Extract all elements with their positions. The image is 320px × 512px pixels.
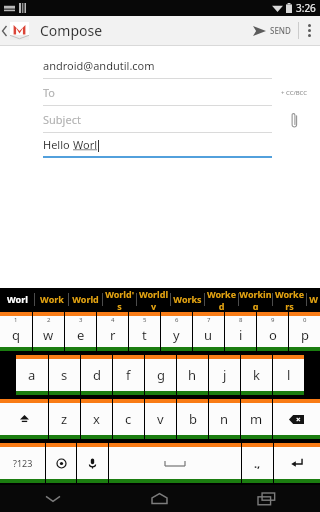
button[interactable]: W: [307, 288, 320, 310]
button[interactable]: f: [113, 355, 144, 395]
staticText: World: [72, 293, 99, 305]
staticText: 7: [207, 316, 211, 324]
button[interactable]: 6: [161, 312, 192, 351]
button[interactable]: 0: [289, 312, 320, 351]
button[interactable]: m: [241, 399, 272, 439]
button[interactable]: 8: [225, 312, 256, 351]
button[interactable]: Enter: [274, 443, 320, 483]
button[interactable]: Voice input: [77, 443, 108, 483]
button[interactable]: 5: [129, 312, 160, 351]
button[interactable]: Comma and period: [242, 443, 273, 483]
staticText: v: [157, 410, 164, 428]
staticText: i: [239, 326, 243, 344]
staticText: .,: [254, 456, 261, 471]
button[interactable]: h: [177, 355, 208, 395]
button[interactable]: Recent apps: [213, 485, 320, 512]
staticText: d: [93, 366, 101, 384]
button[interactable]: Navigate up: [0, 22, 31, 40]
button[interactable]: Attach file: [283, 109, 305, 131]
button[interactable]: android@andutil.com: [43, 52, 272, 78]
staticText: u: [204, 326, 213, 344]
button[interactable]: To: [43, 79, 272, 105]
button[interactable]: s: [49, 355, 80, 395]
button[interactable]: Working: [239, 288, 272, 310]
button[interactable]: Space: [109, 443, 241, 483]
button[interactable]: g: [145, 355, 176, 395]
staticText: z: [61, 410, 68, 428]
staticText: + CC/BCC: [281, 89, 308, 97]
button[interactable]: 3: [65, 312, 96, 351]
staticText: 6: [175, 316, 179, 324]
button[interactable]: Shift: [0, 399, 48, 439]
button[interactable]: Worked: [205, 288, 238, 310]
staticText: o: [269, 326, 277, 344]
button[interactable]: Worl: [0, 288, 34, 310]
button[interactable]: More options: [299, 16, 320, 45]
staticText: a: [28, 366, 36, 384]
staticText: Hello: [43, 137, 73, 152]
button[interactable]: Work: [35, 288, 68, 310]
staticText: Subject: [43, 112, 81, 127]
button[interactable]: Change language: [46, 443, 76, 483]
staticText: Worldly: [137, 288, 170, 310]
button[interactable]: 1: [0, 312, 32, 351]
button[interactable]: a: [16, 355, 48, 395]
staticText: ?123: [13, 457, 33, 469]
staticText: Working: [239, 288, 272, 310]
button[interactable]: SEND: [246, 16, 298, 45]
button[interactable]: n: [209, 399, 240, 439]
staticText: W: [309, 293, 318, 305]
button[interactable]: Delete: [273, 399, 320, 439]
button[interactable]: b: [177, 399, 208, 439]
button[interactable]: k: [241, 355, 272, 395]
staticText: World's: [103, 288, 136, 310]
button[interactable]: World's: [103, 288, 136, 310]
button[interactable]: Works: [171, 288, 204, 310]
staticText: 5: [143, 316, 147, 324]
staticText: Compose: [40, 21, 103, 40]
button[interactable]: Workers: [273, 288, 306, 310]
staticText: 4: [111, 316, 115, 324]
staticText: g: [157, 366, 165, 384]
staticText: q: [12, 326, 20, 344]
button[interactable]: d: [81, 355, 112, 395]
staticText: l: [287, 366, 291, 384]
staticText: 1: [14, 316, 18, 324]
button[interactable]: x: [81, 399, 112, 439]
button[interactable]: 4: [97, 312, 128, 351]
staticText: Work: [40, 293, 64, 305]
staticText: b: [189, 410, 197, 428]
button[interactable]: c: [113, 399, 144, 439]
button[interactable]: Subject: [43, 106, 272, 132]
button[interactable]: Hide keyboard: [0, 485, 106, 512]
staticText: m: [250, 410, 263, 428]
button[interactable]: 2: [33, 312, 64, 351]
button[interactable]: v: [145, 399, 176, 439]
button[interactable]: Hello: [43, 133, 272, 156]
button[interactable]: World: [69, 288, 102, 310]
staticText: 8: [239, 316, 243, 324]
staticText: w: [43, 326, 54, 344]
staticText: p: [301, 326, 309, 344]
staticText: c: [125, 410, 132, 428]
staticText: 3: [79, 316, 83, 324]
button[interactable]: l: [273, 355, 304, 395]
staticText: 0: [303, 316, 307, 324]
staticText: r: [110, 326, 116, 344]
staticText: To: [43, 85, 56, 100]
button[interactable]: Home: [106, 485, 213, 512]
staticText: Worked: [205, 288, 238, 310]
staticText: Worl: [7, 293, 28, 305]
staticText: Worl: [73, 137, 98, 152]
button[interactable]: ?123: [0, 443, 45, 483]
staticText: t: [142, 326, 147, 344]
button[interactable]: + CC/BCC: [281, 82, 308, 104]
staticText: Workers: [273, 288, 306, 310]
button[interactable]: 7: [193, 312, 224, 351]
button[interactable]: Worldly: [137, 288, 170, 310]
staticText: e: [77, 326, 85, 344]
staticText: SEND: [270, 25, 291, 36]
button[interactable]: j: [209, 355, 240, 395]
button[interactable]: z: [49, 399, 80, 439]
button[interactable]: 9: [257, 312, 288, 351]
